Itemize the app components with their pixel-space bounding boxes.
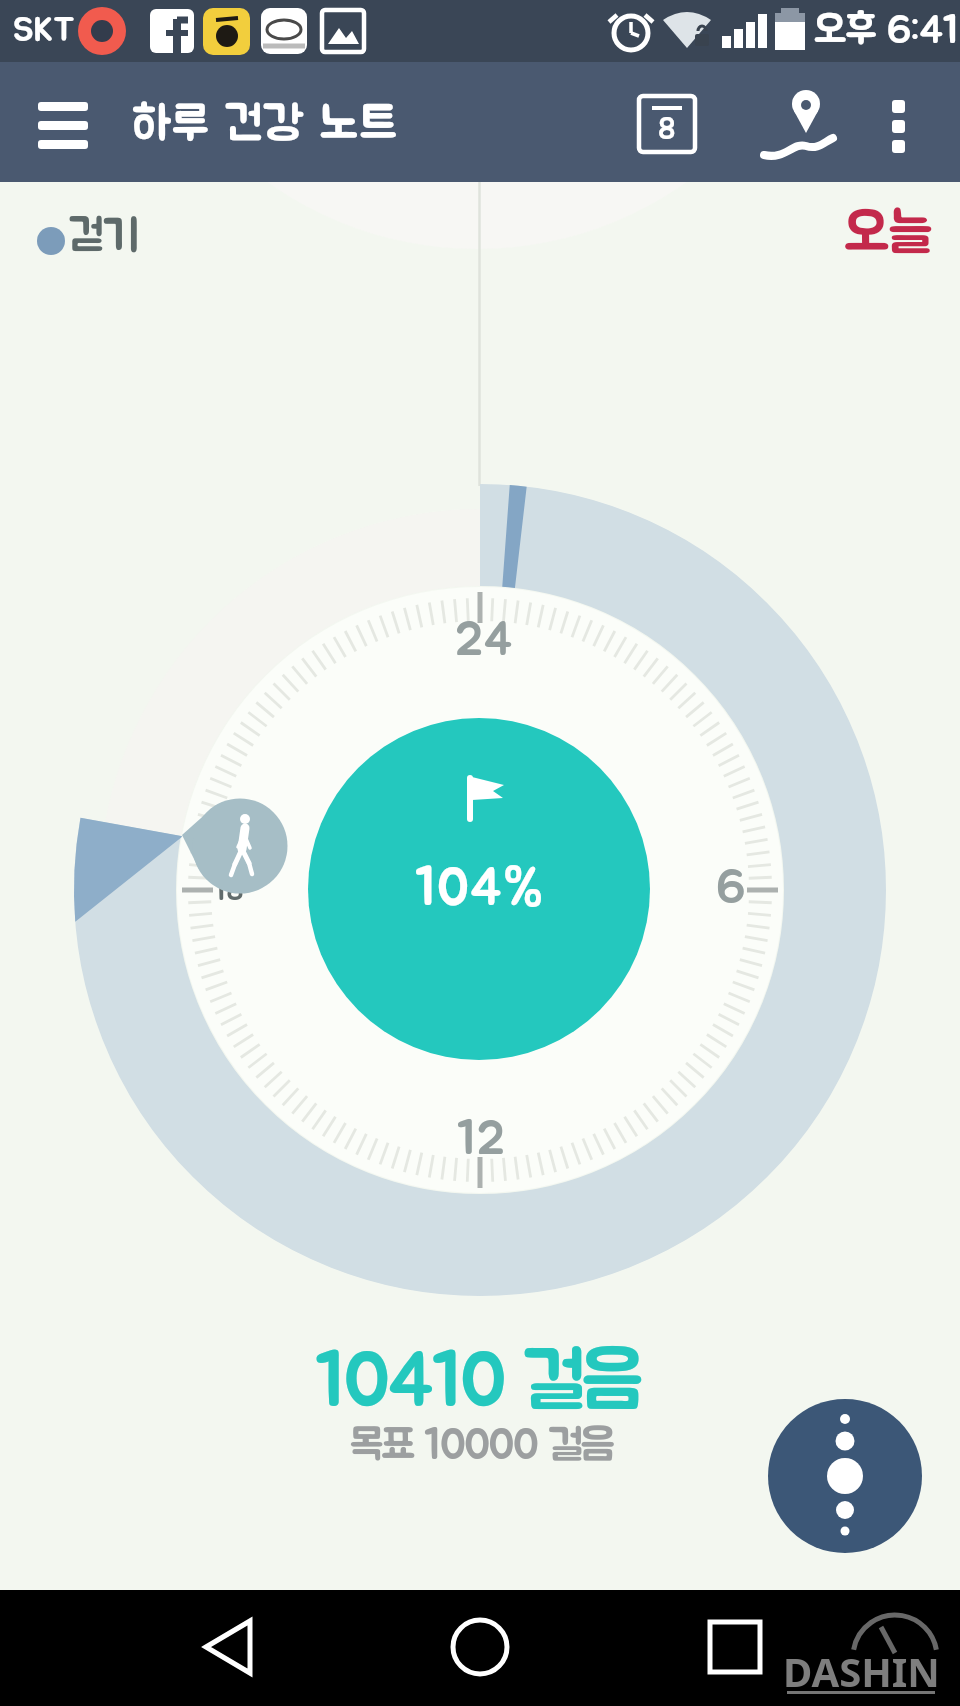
staticText: DASHIN — [783, 1644, 940, 1692]
button[interactable] — [24, 96, 102, 164]
staticText: 18 — [214, 876, 244, 906]
staticText: 오후 6:41 — [814, 11, 959, 51]
staticText: 104% — [415, 863, 544, 916]
staticText: 하루 건강 노트 — [132, 101, 398, 148]
staticText: 24 — [455, 617, 514, 665]
staticText: 목표 10000 걸음 — [350, 1425, 613, 1468]
button[interactable] — [675, 1598, 795, 1698]
button[interactable] — [760, 93, 840, 159]
button[interactable] — [168, 1598, 288, 1698]
staticText: SKT — [13, 14, 75, 48]
staticText: 걷기 — [69, 215, 139, 259]
button[interactable] — [874, 90, 924, 160]
button[interactable]: 오늘 — [818, 202, 958, 266]
button[interactable] — [768, 1399, 922, 1553]
staticText: 오늘 — [844, 206, 932, 262]
button[interactable] — [420, 1598, 540, 1698]
button[interactable] — [636, 93, 698, 155]
staticText: 12 — [457, 1116, 505, 1164]
staticText: 10410 걸음 — [315, 1344, 640, 1421]
staticText: 6 — [716, 865, 746, 913]
staticText: 8 — [658, 115, 676, 145]
button[interactable]: 8 — [652, 113, 682, 147]
